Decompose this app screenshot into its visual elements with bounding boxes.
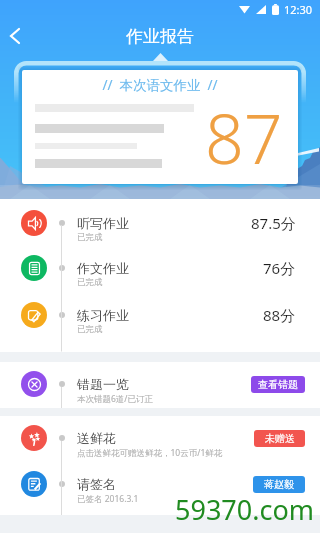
staticText: 点击送鲜花可赠送鲜花，10云币/1鲜花 bbox=[77, 447, 223, 459]
staticText: 查看错题 bbox=[258, 378, 298, 391]
button[interactable]: 查看错题 bbox=[251, 376, 305, 393]
staticText: 76分 bbox=[263, 258, 296, 278]
staticText: 87.5分 bbox=[251, 213, 296, 233]
button[interactable]: 请签名 bbox=[0, 462, 320, 508]
staticText: 练习作业 bbox=[77, 307, 129, 323]
button[interactable]: 听写作业 bbox=[0, 201, 320, 247]
button[interactable]: 未赠送 bbox=[254, 430, 305, 447]
staticText: 送鲜花 bbox=[77, 430, 116, 446]
button[interactable]: 练习作业 bbox=[0, 293, 320, 339]
staticText: 请签名 bbox=[77, 476, 116, 492]
staticText: 本次错题6道/已订正 bbox=[77, 393, 154, 405]
staticText: 已签名 2016.3.1 bbox=[77, 493, 139, 505]
staticText: 错题一览 bbox=[77, 376, 129, 392]
button[interactable]: 错题一览 bbox=[0, 362, 320, 408]
staticText: 听写作业 bbox=[77, 215, 129, 231]
staticText: 作业报告 bbox=[126, 26, 194, 47]
staticText: 87 bbox=[205, 91, 283, 184]
button[interactable]: 蒋赵毅 bbox=[253, 476, 305, 493]
staticText: 已完成 bbox=[77, 232, 103, 243]
button[interactable]: Back bbox=[0, 19, 36, 53]
staticText: // 本次语文作业 // bbox=[22, 76, 298, 94]
staticText: 作文作业 bbox=[77, 260, 129, 276]
staticText: 59370.com bbox=[175, 491, 314, 528]
staticText: 已完成 bbox=[77, 277, 103, 288]
staticText: 12:30 bbox=[284, 2, 313, 17]
staticText: 88分 bbox=[263, 305, 296, 325]
staticText: 已完成 bbox=[77, 324, 103, 335]
staticText: 未赠送 bbox=[265, 432, 295, 445]
button[interactable]: 送鲜花 bbox=[0, 416, 320, 462]
button[interactable]: 作文作业 bbox=[0, 246, 320, 292]
staticText: 蒋赵毅 bbox=[264, 478, 294, 491]
